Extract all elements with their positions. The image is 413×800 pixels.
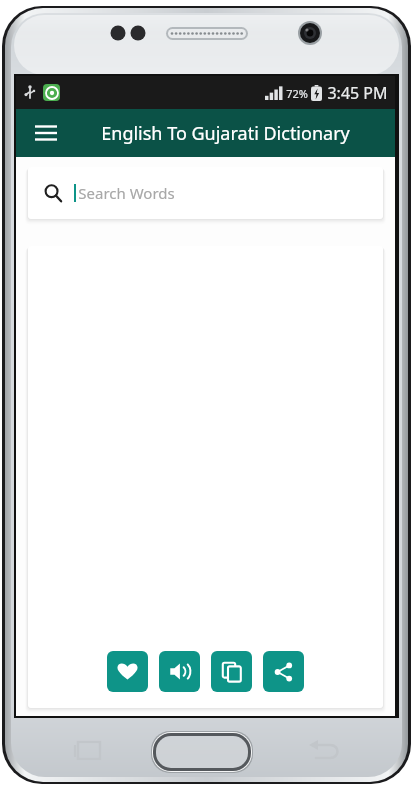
- staticText: English To Gujarati Dictionary: [101, 121, 350, 146]
- button[interactable]: Copy: [211, 651, 252, 692]
- staticText: Search Words: [78, 183, 175, 203]
- staticText: 3:45 PM: [327, 82, 388, 104]
- button[interactable]: Share: [263, 651, 304, 692]
- button[interactable]: Open navigation drawer: [26, 113, 66, 153]
- button[interactable]: Speak: [159, 651, 200, 692]
- button[interactable]: Search Words: [28, 167, 383, 219]
- button[interactable]: Favorite: [107, 651, 148, 692]
- staticText: 72%: [286, 86, 308, 101]
